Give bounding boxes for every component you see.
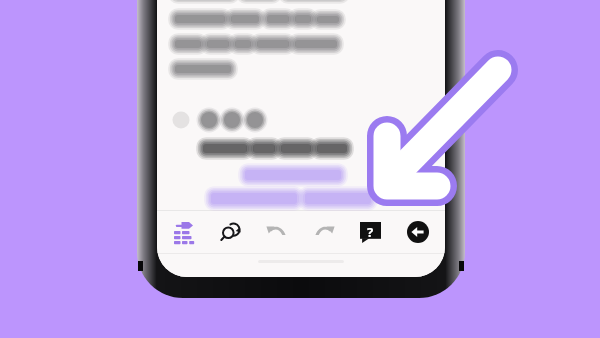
button[interactable]: Undo [253, 211, 300, 253]
staticText: ? [367, 223, 374, 241]
button[interactable]: Text formatting [161, 211, 207, 253]
button[interactable]: Exit [394, 211, 441, 253]
button[interactable]: Find and replace [207, 211, 253, 253]
button[interactable]: Redo [300, 211, 347, 253]
button[interactable]: Help [347, 211, 394, 253]
